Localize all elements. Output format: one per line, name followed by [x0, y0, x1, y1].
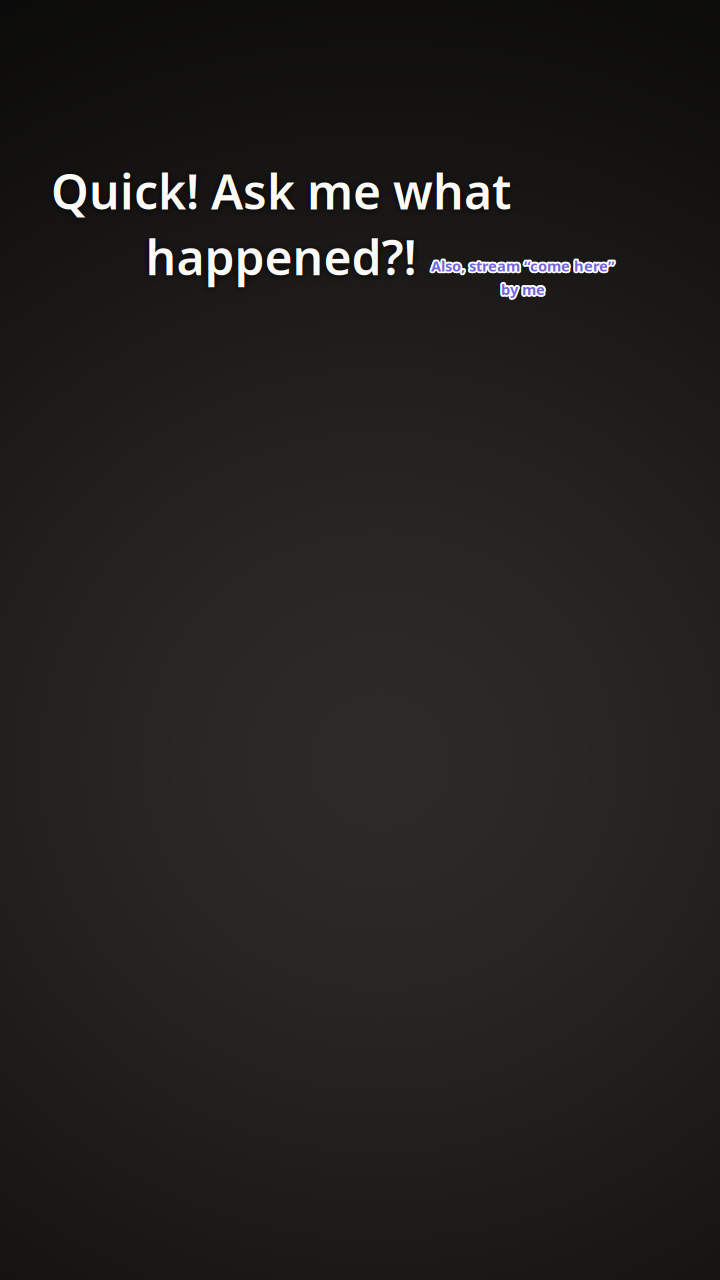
staticText: by me: [503, 280, 547, 300]
button[interactable]: Quick! Ask me what: [41, 159, 521, 288]
staticText: by me: [502, 278, 546, 297]
staticText: Also, stream “come here”: [430, 258, 614, 277]
staticText: by me: [499, 280, 543, 300]
staticText: Also, stream “come here”: [429, 255, 613, 275]
staticText: by me: [500, 281, 544, 300]
staticText: by me: [502, 281, 546, 300]
staticText: Also, stream “come here”: [431, 258, 615, 277]
staticText: by me: [499, 279, 543, 299]
staticText: by me: [499, 279, 543, 298]
staticText: Also, stream “come here”: [433, 255, 617, 275]
staticText: happened?!: [145, 225, 416, 288]
staticText: Also, stream “come here”: [432, 258, 616, 277]
staticText: Also, stream “come here”: [431, 256, 615, 275]
staticText: Also, stream “come here”: [432, 254, 616, 274]
staticText: Also, stream “come here”: [430, 254, 614, 274]
staticText: Also, stream “come here”: [433, 257, 617, 276]
button[interactable]: Also, stream “come here”: [423, 256, 623, 299]
staticText: by me: [503, 279, 547, 299]
staticText: by me: [500, 278, 544, 297]
staticText: Also, stream “come here”: [429, 256, 613, 275]
staticText: Also, stream “come here”: [433, 256, 617, 275]
staticText: Also, stream “come here”: [431, 254, 615, 274]
staticText: by me: [503, 279, 547, 298]
staticText: Quick! Ask me what: [51, 159, 511, 223]
staticText: by me: [501, 278, 545, 297]
staticText: by me: [501, 279, 545, 299]
staticText: Also, stream “come here”: [429, 257, 613, 276]
staticText: by me: [501, 281, 545, 301]
